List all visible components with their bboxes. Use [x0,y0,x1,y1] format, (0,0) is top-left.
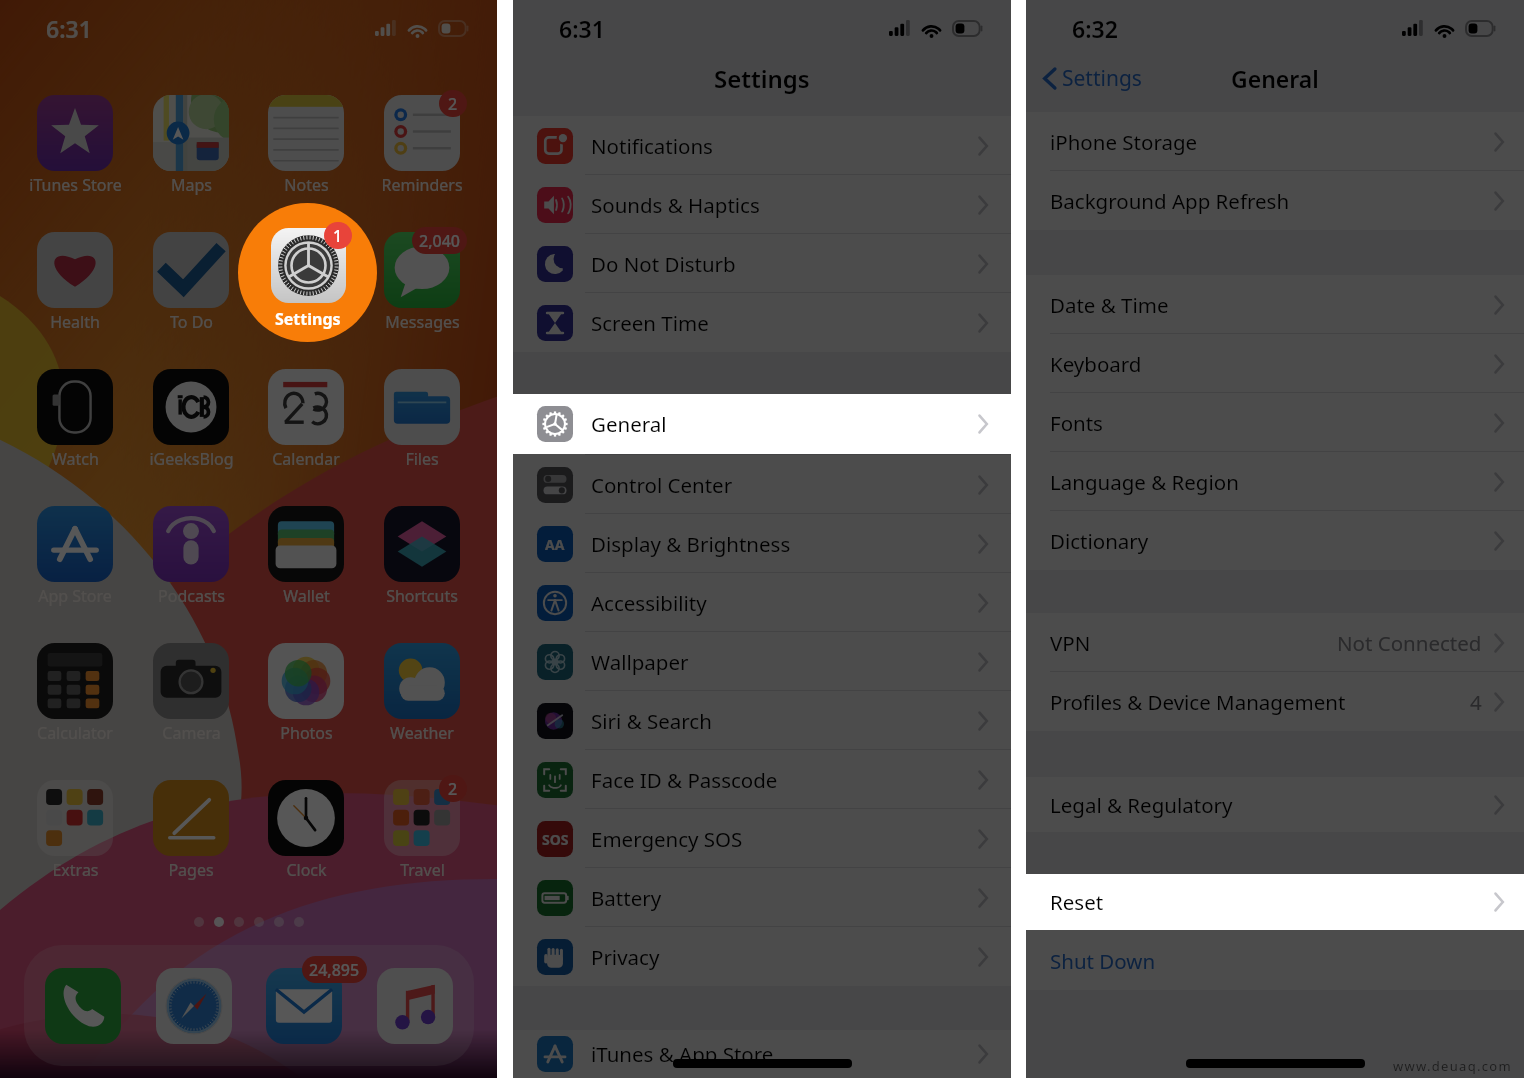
button[interactable]: Safari [149,966,239,1046]
button[interactable]: Music [370,966,460,1046]
button[interactable]: iPhone Storage [1026,112,1524,171]
button[interactable]: iTunes & App Store [513,1030,1011,1078]
staticText: Reset [1050,890,1104,918]
button[interactable]: Background App Refresh [1026,171,1524,230]
staticText: iTunes Store [29,174,122,196]
staticText: 2 [448,93,458,115]
staticText: 2,040 [419,230,460,252]
button[interactable]: General [513,394,1011,454]
button[interactable]: Watch [26,369,124,470]
staticText: 6:31 [46,13,92,44]
button[interactable]: VPN [1026,613,1524,672]
button[interactable]: Notes [257,95,355,196]
button[interactable]: Siri & Search [513,691,1011,750]
button[interactable]: Calculator [26,643,124,744]
button[interactable]: Phone [38,966,128,1046]
button[interactable]: General [513,396,1011,455]
button[interactable]: iTunes Store [26,95,124,196]
button[interactable]: Fonts [1026,393,1524,452]
button[interactable]: To Do [142,232,240,333]
button[interactable]: Keyboard [1026,334,1524,393]
staticText: General [591,412,667,440]
button[interactable]: Settings app icon [238,203,377,342]
button[interactable]: Mail [259,966,349,1046]
button[interactable]: Camera [142,643,240,744]
button[interactable]: AA [513,514,1011,573]
button[interactable]: Pages [142,780,240,881]
button[interactable]: Screen Time [513,293,1011,352]
button[interactable]: Files [373,369,471,470]
button[interactable]: Clock [257,780,355,881]
button[interactable]: Photos [257,643,355,744]
staticText: iTunes & App Store [591,1040,774,1068]
staticText: iGeeksBlog [149,448,234,470]
staticText: Screen Time [591,309,709,337]
button[interactable]: Reminders [373,95,471,196]
button[interactable]: Maps [142,95,240,196]
staticText: To Do [170,311,213,333]
staticText: Travel [400,859,445,881]
staticText: Settings [276,311,337,333]
staticText: Notes [284,174,329,196]
button[interactable]: SOS [513,809,1011,868]
staticText: 6:32 [1072,13,1118,44]
button[interactable]: Settings [1043,64,1142,93]
staticText: Face ID & Passcode [591,766,778,794]
button[interactable]: iGeeksBlog [142,369,240,470]
button[interactable]: Reset [1026,874,1524,930]
button[interactable]: Messages [373,232,471,333]
button[interactable]: Wallpaper [513,632,1011,691]
staticText: Extras [52,859,99,881]
staticText: Reminders [381,174,463,196]
staticText: Language & Region [1050,468,1239,496]
staticText: Control Center [591,471,733,499]
button[interactable]: Privacy [513,927,1011,986]
staticText: VPN [1050,629,1091,657]
staticText: Do Not Disturb [591,250,736,278]
staticText: 1 [332,230,342,252]
button[interactable]: Weather [373,643,471,744]
button[interactable]: Accessibility [513,573,1011,632]
button[interactable]: Shut Down [1026,932,1524,990]
staticText: Reset [1050,888,1104,916]
staticText: Shut Down [1050,947,1156,975]
staticText: Siri & Search [591,707,712,735]
staticText: Podcasts [158,585,225,607]
staticText: Calendar [272,448,340,470]
staticText: 1 [333,225,343,247]
button[interactable]: App Store [26,506,124,607]
button[interactable]: Settings [257,232,355,333]
staticText: Accessibility [591,589,707,617]
button[interactable]: Control Center [513,455,1011,514]
button[interactable]: Do Not Disturb [513,234,1011,293]
button[interactable]: Health [26,232,124,333]
button[interactable]: Date & Time [1026,275,1524,334]
button[interactable]: Notifications [513,116,1011,175]
button[interactable]: Profiles & Device Management [1026,672,1524,731]
button[interactable]: Podcasts [142,506,240,607]
button[interactable]: Extras [26,780,124,881]
staticText: 2 [448,778,458,800]
staticText: 24,895 [309,959,360,981]
staticText: Background App Refresh [1050,187,1290,215]
button[interactable]: Reset [1026,876,1524,932]
staticText: Wallpaper [591,648,689,676]
button[interactable]: Language & Region [1026,452,1524,511]
staticText: Maps [171,174,212,196]
button[interactable]: Calendar [257,369,355,470]
staticText: Legal & Regulatory [1050,791,1233,819]
staticText: Privacy [591,943,660,971]
staticText: iPhone Storage [1050,128,1198,156]
button[interactable]: General [513,394,1011,454]
button[interactable]: Dictionary [1026,511,1524,570]
button[interactable]: Wallet [257,506,355,607]
button[interactable]: Battery [513,868,1011,927]
button[interactable]: Sounds & Haptics [513,175,1011,234]
staticText: Clock [286,859,327,881]
button[interactable]: Reset [1026,874,1524,930]
button[interactable]: Legal & Regulatory [1026,777,1524,832]
button[interactable]: Face ID & Passcode [513,750,1011,809]
button[interactable]: Travel [373,780,471,881]
staticText: Date & Time [1050,291,1169,319]
button[interactable]: Shortcuts [373,506,471,607]
